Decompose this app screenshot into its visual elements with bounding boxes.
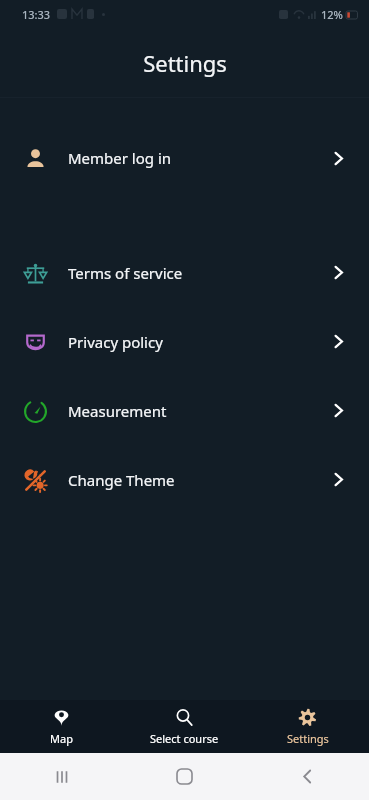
staticText: Member log in bbox=[68, 148, 172, 168]
button[interactable]: Map bbox=[0, 700, 123, 753]
staticText: Settings bbox=[143, 48, 227, 78]
button[interactable]: Member log in bbox=[0, 98, 369, 218]
button[interactable]: Change Theme bbox=[0, 445, 369, 514]
staticText: Map bbox=[50, 731, 73, 746]
button[interactable]: Privacy policy bbox=[0, 307, 369, 376]
staticText: Change Theme bbox=[68, 470, 175, 490]
button[interactable]: Back bbox=[246, 753, 369, 800]
button[interactable]: Terms of service bbox=[0, 238, 369, 307]
button[interactable]: Measurement bbox=[0, 376, 369, 445]
staticText: Privacy policy bbox=[68, 332, 163, 352]
button[interactable]: Settings bbox=[246, 700, 369, 753]
button[interactable]: Select course bbox=[123, 700, 246, 753]
staticText: Measurement bbox=[68, 401, 167, 421]
staticText: Select course bbox=[150, 731, 219, 746]
staticText: Settings bbox=[287, 731, 329, 746]
staticText: Terms of service bbox=[68, 263, 183, 283]
staticText: 12% bbox=[321, 7, 343, 22]
button[interactable]: Recent apps bbox=[0, 753, 123, 800]
staticText: 13:33 bbox=[22, 7, 51, 22]
button[interactable]: Home bbox=[123, 753, 246, 800]
